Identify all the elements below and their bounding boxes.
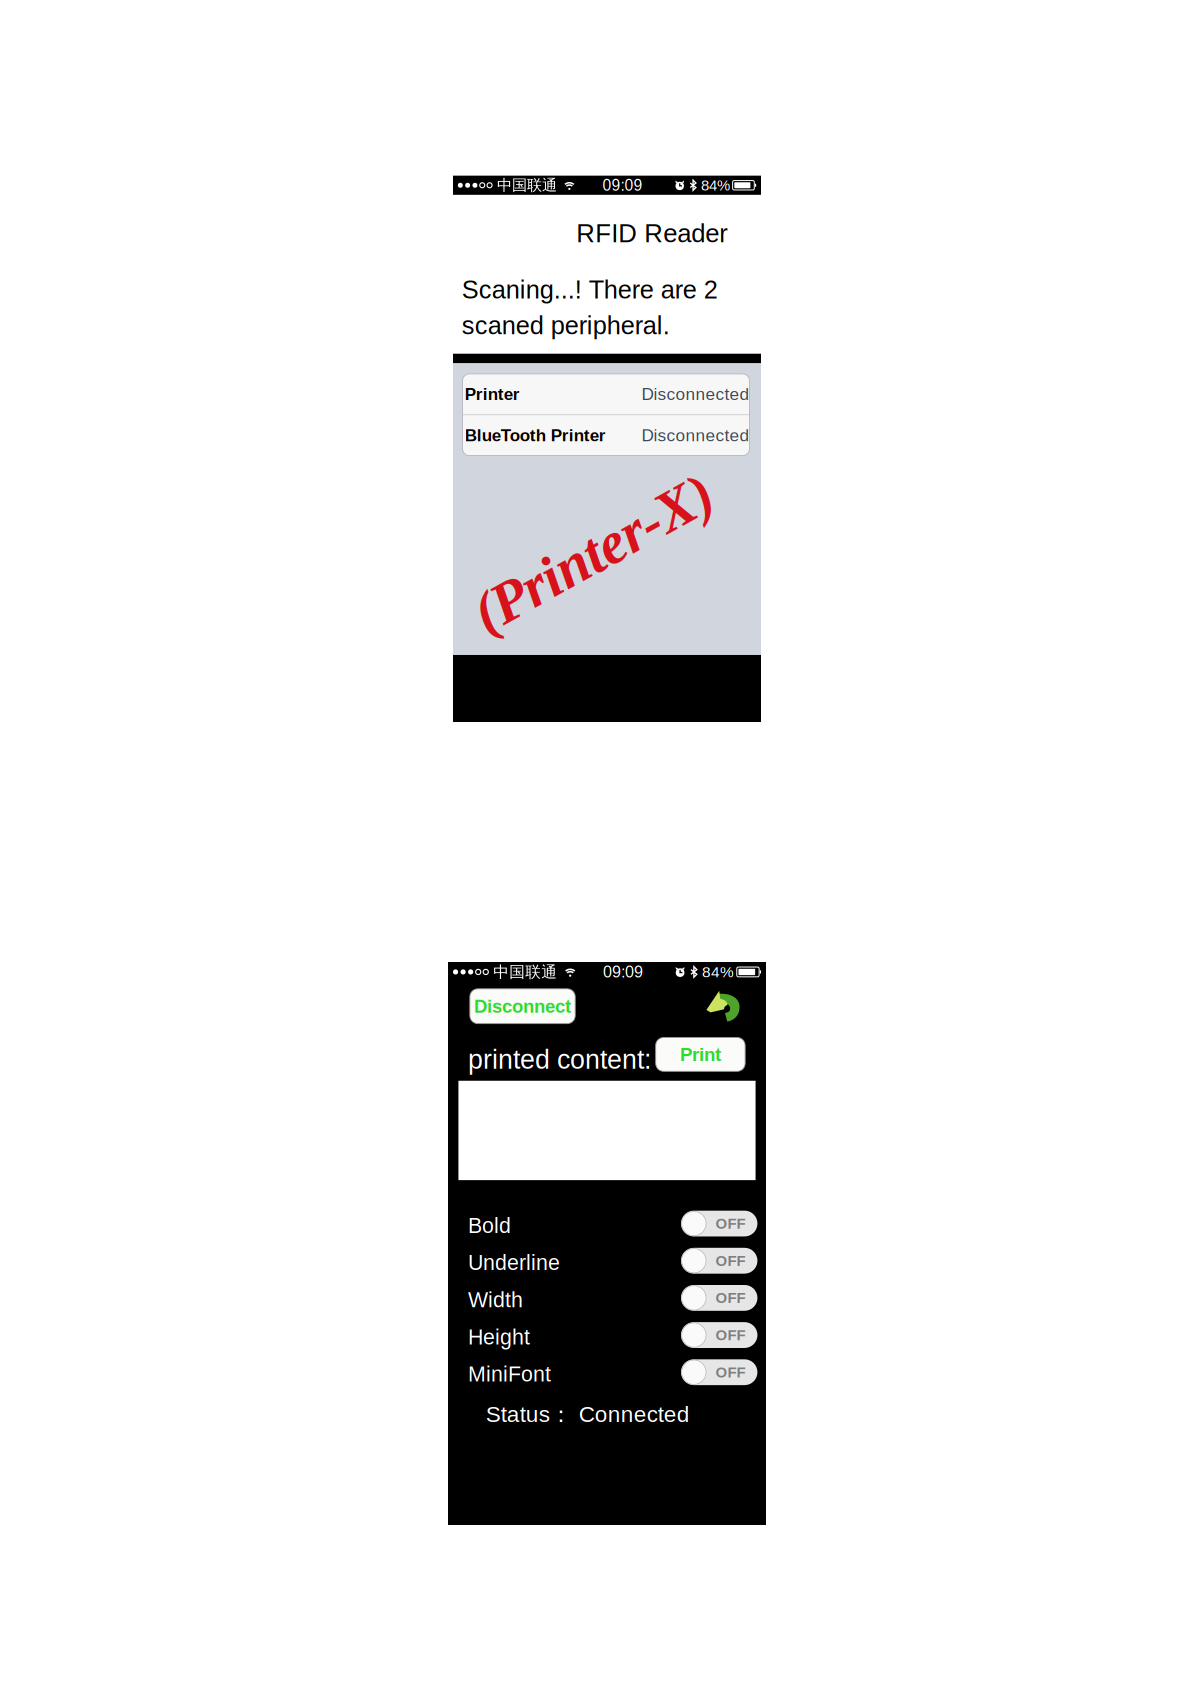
staticText: OFF [715, 1252, 745, 1269]
staticText: OFF [715, 1215, 745, 1232]
staticText: 中国联通 [497, 176, 557, 195]
staticText: scaned peripheral. [462, 311, 670, 339]
button[interactable]: Toggle off [681, 1359, 757, 1385]
staticText: 09:09 [603, 963, 643, 981]
staticText: Width [468, 1288, 523, 1312]
staticText: OFF [715, 1327, 745, 1343]
button[interactable]: Print [656, 1037, 745, 1071]
staticText: OFF [715, 1289, 745, 1306]
staticText: BlueTooth Printer [465, 426, 606, 445]
staticText: Scaning...! There are 2 [462, 275, 718, 304]
staticText: Disconnect [474, 996, 571, 1017]
staticText: printed content: [468, 1044, 651, 1074]
button[interactable]: Toggle off [681, 1322, 757, 1348]
button[interactable]: BlueTooth Printer [463, 415, 749, 455]
staticText: Underline [468, 1251, 560, 1275]
staticText: 84% [702, 963, 734, 981]
staticText: Height [468, 1325, 530, 1349]
staticText: OFF [715, 1364, 745, 1381]
staticText: 84% [701, 177, 730, 194]
button[interactable]: Printer [463, 374, 749, 414]
staticText: 09:09 [602, 176, 642, 194]
staticText: MiniFont [468, 1362, 551, 1386]
button[interactable]: Toggle off [681, 1211, 757, 1236]
staticText: Printer [465, 385, 520, 404]
staticText: Bold [468, 1214, 511, 1237]
button[interactable]: Toggle off [681, 1248, 757, 1274]
staticText: 中国联通 [493, 962, 557, 982]
staticText: Status： Connected [486, 1400, 690, 1429]
staticText: Print [680, 1044, 721, 1065]
staticText: RFID Reader [576, 219, 728, 248]
staticText: (Printer-X) [461, 521, 726, 585]
button[interactable]: Disconnect [470, 989, 575, 1024]
staticText: Disconnected [641, 426, 749, 445]
staticText: Disconnected [641, 384, 749, 404]
button[interactable]: Back [706, 991, 740, 1022]
button[interactable]: Toggle off [681, 1285, 757, 1311]
